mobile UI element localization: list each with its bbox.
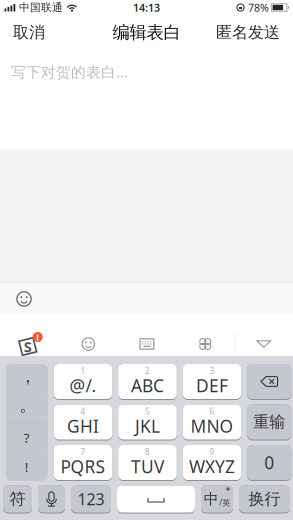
staticText: DEF <box>196 374 228 397</box>
button[interactable]: 取消 <box>13 23 45 42</box>
staticText: 重输 <box>253 412 285 432</box>
staticText: 3 <box>209 365 214 376</box>
staticText: 换行 <box>248 489 280 509</box>
button[interactable]: 1 <box>54 364 112 400</box>
staticText: 78% <box>248 0 269 15</box>
button[interactable]: ， <box>6 364 48 393</box>
button[interactable]: 2 <box>118 364 177 400</box>
button[interactable]: 。 <box>6 394 48 423</box>
staticText: MNO <box>190 414 233 437</box>
button[interactable]: 9 <box>183 445 241 481</box>
staticText: 5 <box>145 406 150 417</box>
button[interactable]: 搜狗输入法 <box>0 332 59 356</box>
staticText: 6 <box>209 406 214 417</box>
staticText: ! <box>36 331 39 343</box>
button[interactable]: 6 <box>183 404 241 440</box>
staticText: 9 <box>209 446 214 457</box>
button[interactable]: 语音输入 <box>38 485 65 513</box>
staticText: 中 <box>204 490 219 508</box>
button[interactable]: 7 <box>54 445 112 481</box>
button[interactable]: 重输 <box>247 404 291 440</box>
staticText: 14:13 <box>133 0 160 15</box>
staticText: 7 <box>80 446 85 457</box>
staticText: S <box>24 337 32 356</box>
button[interactable]: 表情 <box>8 283 40 315</box>
staticText: 匿名发送 <box>216 23 280 42</box>
button[interactable]: 中英文切换 <box>201 485 233 513</box>
staticText: ? <box>24 429 30 446</box>
staticText: 2 <box>145 365 150 376</box>
button[interactable]: 123 <box>71 485 111 513</box>
button[interactable]: 0 <box>247 445 291 481</box>
staticText: 4 <box>80 406 85 417</box>
button[interactable]: ！ <box>6 453 48 481</box>
staticText: TUV <box>131 455 164 478</box>
staticText: /英 <box>219 497 230 508</box>
staticText: 8 <box>145 446 150 457</box>
staticText: 。 <box>19 394 36 416</box>
button[interactable]: 4 <box>54 404 112 440</box>
staticText: 编辑表白 <box>112 22 180 43</box>
button[interactable]: 匿名发送 <box>216 23 280 42</box>
button[interactable]: 换行 <box>239 485 290 513</box>
button[interactable]: ？ <box>6 423 48 452</box>
staticText: @/. <box>69 374 96 397</box>
button[interactable]: 3 <box>183 364 241 400</box>
button[interactable]: 8 <box>118 445 177 481</box>
staticText: 中国联通 <box>19 1 63 14</box>
button[interactable]: 空格 <box>117 485 195 513</box>
button[interactable]: 删除 <box>247 364 291 400</box>
staticText: 符 <box>9 489 25 509</box>
staticText: 写下对贺的表白... <box>11 62 128 81</box>
button[interactable]: 键盘 <box>118 332 176 356</box>
staticText: WXYZ <box>189 455 235 478</box>
button[interactable]: 符 <box>3 485 32 513</box>
button[interactable]: 表情 <box>59 332 118 356</box>
staticText: ， <box>19 366 36 387</box>
button[interactable]: 快捷功能 <box>176 332 234 356</box>
staticText: GHI <box>67 414 99 437</box>
button[interactable]: 收起键盘 <box>235 332 293 356</box>
staticText: 取消 <box>13 23 45 42</box>
staticText: ! <box>25 458 29 476</box>
staticText: PQRS <box>60 455 105 478</box>
staticText: JKL <box>135 414 160 437</box>
staticText: ABC <box>131 374 164 397</box>
button[interactable]: 5 <box>118 404 177 440</box>
staticText: 0 <box>264 451 274 474</box>
staticText: 1 <box>80 365 85 376</box>
staticText: 123 <box>77 488 104 510</box>
